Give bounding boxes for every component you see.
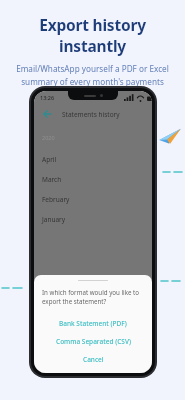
button[interactable]: February <box>34 189 152 209</box>
staticText: February <box>42 195 70 204</box>
staticText: Cancel <box>83 355 104 364</box>
staticText: 13:26 <box>40 94 55 101</box>
staticText: January <box>42 215 66 224</box>
staticText: In which format would you like to export… <box>42 288 144 306</box>
staticText: Statements history <box>62 110 120 119</box>
button[interactable]: Cancel <box>34 350 152 368</box>
button[interactable]: April <box>34 149 152 169</box>
button[interactable]: January <box>34 209 152 229</box>
staticText: 2020 <box>42 134 55 141</box>
button[interactable]: Comma Separated (CSV) <box>34 332 152 350</box>
staticText: Bank Statement (PDF) <box>59 319 127 328</box>
button[interactable]: Bank Statement (PDF) <box>34 314 152 332</box>
button[interactable]: March <box>34 169 152 189</box>
button[interactable]: Back <box>41 108 53 120</box>
staticText: Email/WhatsApp yourself a PDF or Excel s… <box>16 63 169 88</box>
staticText: Comma Separated (CSV) <box>56 337 131 346</box>
staticText: March <box>42 175 62 184</box>
staticText: April <box>42 155 57 164</box>
staticText: Export history instantly <box>8 14 177 56</box>
